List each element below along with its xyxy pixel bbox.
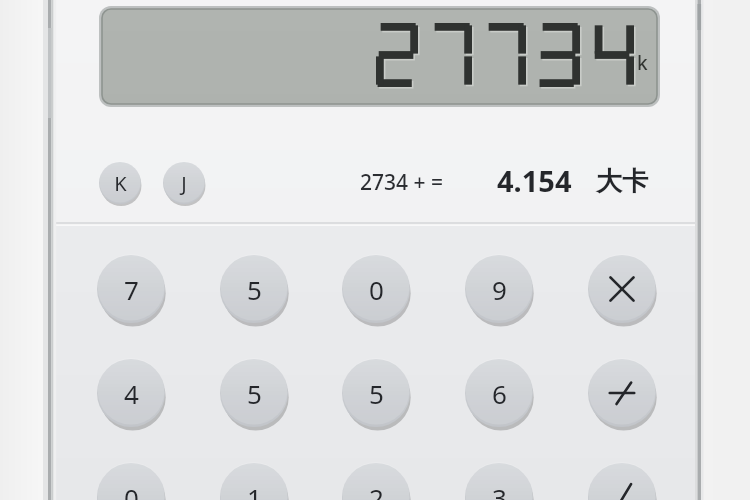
staticText: 2734 + = <box>360 168 443 197</box>
staticText: 0 <box>369 272 384 307</box>
button[interactable]: 0 <box>342 255 410 323</box>
button[interactable]: 7 <box>97 255 165 323</box>
staticText: 3 <box>492 480 507 500</box>
staticText: 9 <box>492 272 507 307</box>
button[interactable]: Slash <box>588 463 656 500</box>
staticText: 5 <box>247 376 262 411</box>
staticText: k <box>637 50 648 76</box>
button[interactable]: J <box>163 162 205 204</box>
button[interactable]: 2 <box>342 463 410 500</box>
button[interactable]: 5 <box>220 359 288 427</box>
button[interactable]: 6 <box>465 359 533 427</box>
button[interactable]: 3 <box>465 463 533 500</box>
staticText: 大卡 <box>596 165 648 198</box>
staticText: 1 <box>247 480 262 500</box>
staticText: J <box>181 170 187 197</box>
button[interactable]: 1 <box>220 463 288 500</box>
staticText: 4 <box>124 376 139 411</box>
staticText: 0 <box>124 480 139 500</box>
staticText: 2 <box>369 480 384 500</box>
staticText: 6 <box>492 376 507 411</box>
button[interactable]: Multiply <box>588 255 656 323</box>
button[interactable]: Divide <box>588 359 656 427</box>
staticText: 7 <box>124 272 139 307</box>
staticText: 4.154 <box>497 161 572 200</box>
button[interactable]: 5 <box>342 359 410 427</box>
staticText: K <box>114 170 127 197</box>
button[interactable]: 9 <box>465 255 533 323</box>
button[interactable]: 5 <box>220 255 288 323</box>
button[interactable]: 0 <box>97 463 165 500</box>
staticText: 5 <box>369 376 384 411</box>
button[interactable]: K <box>99 162 141 204</box>
staticText: 5 <box>247 272 262 307</box>
button[interactable]: 4 <box>97 359 165 427</box>
